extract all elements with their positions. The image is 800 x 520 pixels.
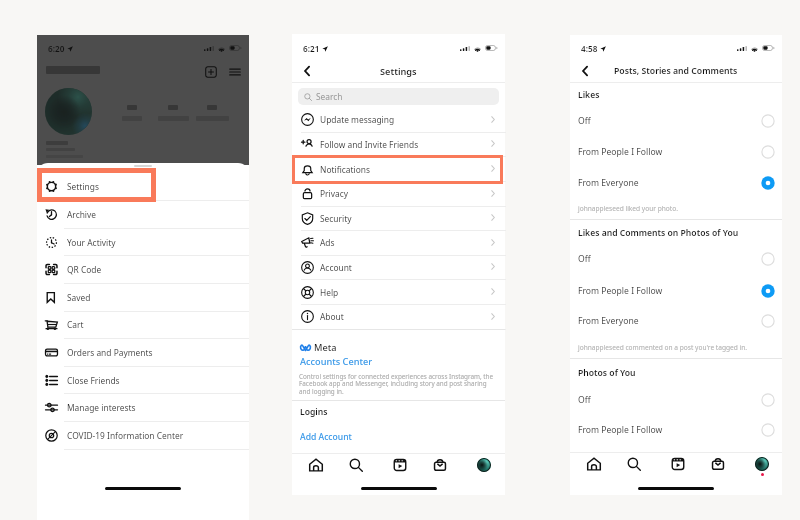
button[interactable]	[292, 230, 505, 255]
button[interactable]: Profile	[752, 454, 772, 474]
staticText: Notifications	[320, 164, 370, 175]
button[interactable]	[37, 283, 249, 311]
button[interactable]	[292, 132, 505, 157]
staticText: Your Activity	[67, 237, 116, 248]
staticText: Photos of You	[578, 367, 636, 379]
staticText: Security	[320, 213, 352, 224]
staticText: QR Code	[67, 264, 102, 275]
staticText: Search	[316, 91, 343, 102]
staticText: Meta	[314, 341, 337, 354]
staticText: About	[320, 311, 344, 322]
button[interactable]: Menu	[229, 66, 241, 78]
staticText: Saved	[67, 292, 91, 303]
button[interactable]: Profile	[474, 455, 494, 475]
button[interactable]	[37, 311, 249, 339]
staticText: Account	[320, 262, 352, 273]
staticText: Off	[578, 253, 591, 265]
staticText: Manage interests	[67, 402, 136, 413]
button[interactable]: Add Account	[300, 430, 352, 444]
staticText: Off	[578, 394, 591, 406]
button[interactable]: Search	[298, 88, 499, 105]
button[interactable]: Search	[624, 454, 644, 474]
button[interactable]: Back	[577, 63, 593, 79]
button[interactable]	[37, 173, 249, 201]
button[interactable]	[37, 421, 249, 449]
button[interactable]: Shop	[430, 455, 450, 475]
button[interactable]	[292, 279, 505, 304]
staticText: Privacy	[320, 188, 348, 199]
button[interactable]	[37, 338, 249, 366]
button[interactable]	[37, 228, 249, 256]
button[interactable]: Shop	[708, 454, 728, 474]
button[interactable]	[570, 276, 782, 306]
staticText: Likes and Comments on Photos of You	[578, 227, 739, 239]
button[interactable]	[37, 393, 249, 421]
staticText: Add Account	[300, 431, 352, 443]
button[interactable]	[570, 385, 782, 415]
button[interactable]	[37, 255, 249, 283]
button[interactable]	[292, 304, 505, 329]
staticText: Accounts Center	[300, 355, 373, 368]
button[interactable]	[292, 206, 505, 231]
staticText: Follow and Invite Friends	[320, 139, 419, 150]
staticText: Likes	[578, 89, 600, 101]
button[interactable]: Home	[306, 455, 326, 475]
staticText: 6:20	[48, 43, 65, 54]
staticText: 4:58	[581, 43, 598, 54]
staticText: Settings	[380, 65, 417, 78]
staticText: From Everyone	[578, 315, 639, 327]
button[interactable]	[292, 255, 505, 280]
staticText: Close Friends	[67, 375, 120, 386]
staticText: Off	[578, 115, 591, 127]
staticText: Logins	[300, 406, 328, 418]
staticText: Ads	[320, 237, 335, 248]
staticText: johnappleseed liked your photo.	[578, 204, 678, 213]
staticText: 6:21	[303, 43, 320, 54]
button[interactable]: Back	[299, 63, 315, 79]
staticText: From People I Follow	[578, 146, 663, 158]
staticText: johnappleseed commented on a post you're…	[578, 343, 748, 352]
button[interactable]: Accounts Center	[300, 354, 373, 368]
button[interactable]	[570, 137, 782, 167]
button[interactable]	[292, 181, 505, 206]
staticText: From Everyone	[578, 177, 639, 189]
staticText: From People I Follow	[578, 285, 663, 297]
button[interactable]	[570, 106, 782, 136]
staticText: COVID-19 Information Center	[67, 430, 184, 441]
button[interactable]	[37, 366, 249, 394]
staticText: Update messaging	[320, 114, 395, 125]
staticText: Settings	[67, 181, 99, 192]
staticText: Cart	[67, 319, 84, 330]
staticText: Archive	[67, 209, 97, 220]
button[interactable]	[570, 168, 782, 198]
button[interactable]	[570, 306, 782, 336]
button[interactable]	[292, 156, 505, 181]
button[interactable]	[37, 200, 249, 228]
button[interactable]	[292, 107, 505, 132]
button[interactable]	[570, 415, 782, 445]
staticText: Control settings for connected experienc…	[299, 372, 497, 396]
button[interactable]: Search	[346, 455, 366, 475]
button[interactable]: Home	[584, 454, 604, 474]
staticText: From People I Follow	[578, 424, 663, 436]
button[interactable]: Reels	[390, 455, 410, 475]
button[interactable]	[570, 244, 782, 274]
staticText: Orders and Payments	[67, 347, 153, 358]
button[interactable]: New post	[205, 66, 217, 78]
staticText: Help	[320, 287, 339, 298]
button[interactable]: Reels	[668, 454, 688, 474]
staticText: Posts, Stories and Comments	[614, 65, 738, 77]
